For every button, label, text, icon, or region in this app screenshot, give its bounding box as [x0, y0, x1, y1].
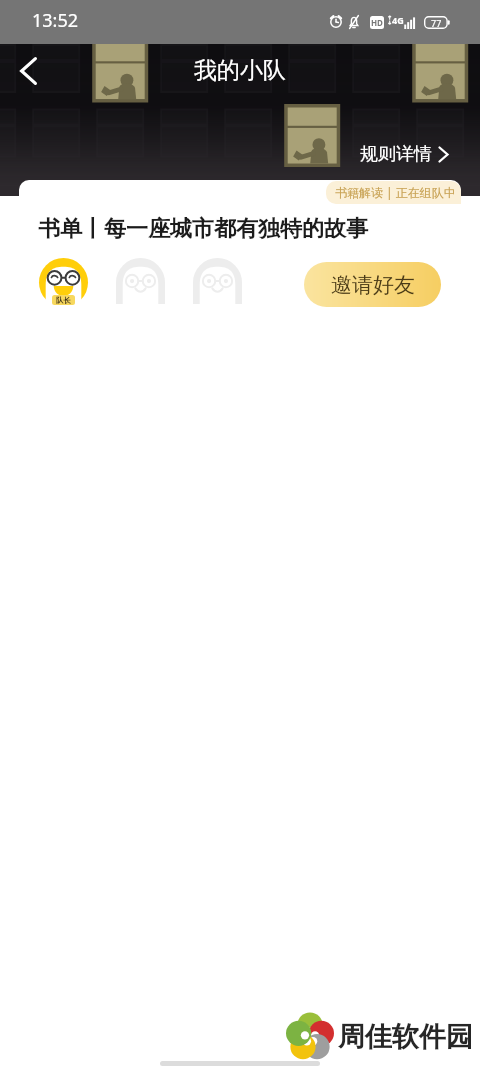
staticText: 邀请好友	[331, 272, 415, 298]
button[interactable]: 规则详情	[357, 139, 452, 170]
staticText: 4G	[392, 14, 404, 26]
button[interactable]: 书单丨每一座城市都有独特的故事	[19, 180, 461, 332]
button[interactable]: 邀请好友	[304, 262, 441, 307]
staticText: 13:52	[32, 8, 79, 33]
staticText: 队长	[56, 296, 71, 305]
staticText: 书单丨每一座城市都有独特的故事	[38, 215, 368, 243]
staticText: 书籍解读 | 正在组队中	[335, 184, 456, 200]
staticText: 规则详情	[360, 143, 432, 166]
staticText: 周佳软件园	[338, 1020, 473, 1054]
staticText: 77	[431, 17, 442, 29]
staticText: 我的小队	[194, 56, 286, 85]
button[interactable]: 返回	[5, 48, 51, 94]
staticText: HD	[371, 17, 383, 28]
